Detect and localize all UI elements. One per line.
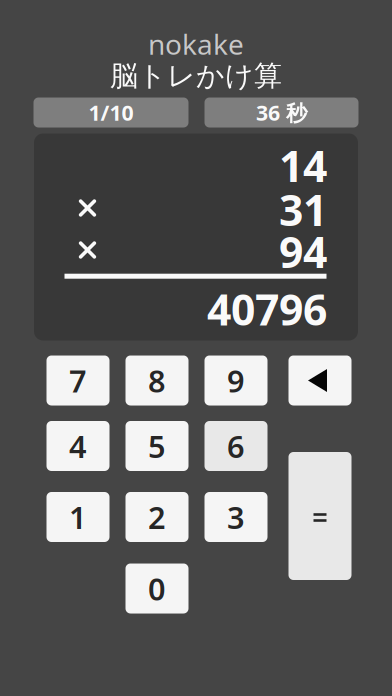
button[interactable]: 9 [204,355,267,405]
staticText: 40796 [207,281,327,337]
staticText: 36 秒 [256,98,307,127]
staticText: 2 [148,496,166,538]
staticText: 4 [69,425,87,467]
staticText: 1/10 [88,98,133,127]
staticText: 14 [279,137,327,194]
button[interactable]: 6 [204,421,267,471]
staticText: 0 [148,568,166,609]
button[interactable]: 0 [125,563,188,613]
staticText: 1 [69,496,87,538]
button[interactable]: 3 [204,492,267,542]
button[interactable]: 4 [46,421,109,471]
button[interactable]: 8 [125,355,188,405]
staticText: 31 [279,181,327,238]
staticText: 3 [227,496,245,538]
button[interactable]: 5 [125,421,188,471]
staticText: 脳トレかけ算 [110,59,282,93]
staticText: 6 [227,425,245,467]
staticText: nokake [148,25,244,63]
staticText: 9 [227,360,245,401]
staticText: 7 [69,360,87,401]
button[interactable]: 36 秒 [204,97,358,127]
staticText: 5 [148,425,166,467]
staticText: 94 [279,223,327,280]
staticText: 8 [148,360,166,401]
button[interactable]: 1 [46,492,109,542]
button[interactable]: 7 [46,355,109,405]
button[interactable]: Equals [288,452,351,580]
button[interactable]: 1/10 [33,97,188,127]
button[interactable]: 2 [125,492,188,542]
button[interactable]: Delete [288,355,351,405]
